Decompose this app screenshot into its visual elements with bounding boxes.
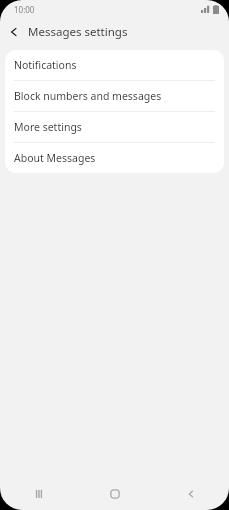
- staticText: More settings: [14, 120, 82, 134]
- button[interactable]: Block numbers and messages: [5, 81, 224, 111]
- button[interactable]: Back: [153, 478, 229, 510]
- button[interactable]: About Messages: [5, 143, 224, 173]
- staticText: About Messages: [14, 151, 96, 165]
- button[interactable]: Home: [77, 478, 153, 510]
- staticText: Block numbers and messages: [14, 89, 162, 103]
- button[interactable]: More settings: [5, 112, 224, 142]
- staticText: 10:00: [14, 4, 35, 15]
- button[interactable]: Back: [0, 18, 28, 46]
- button[interactable]: Recents: [0, 478, 77, 510]
- staticText: Messages settings: [28, 24, 128, 40]
- button[interactable]: Notifications: [5, 50, 224, 80]
- staticText: Notifications: [14, 58, 77, 72]
